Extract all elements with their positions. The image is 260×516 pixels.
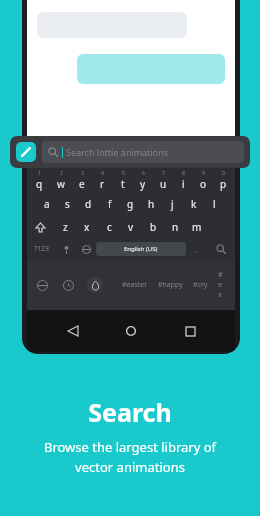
button[interactable]: d xyxy=(78,192,99,216)
button[interactable]: ?123 xyxy=(27,238,56,260)
staticText: d xyxy=(85,197,92,211)
staticText: 8 xyxy=(182,170,185,177)
button[interactable]: a xyxy=(37,192,57,216)
button[interactable]: 4 xyxy=(92,168,113,192)
button[interactable]: l xyxy=(204,192,225,216)
staticText: #cry xyxy=(193,280,208,290)
staticText: c xyxy=(107,220,112,234)
button[interactable]: 6 xyxy=(133,168,153,192)
button[interactable]: 9 xyxy=(193,168,213,192)
button[interactable]: #cry xyxy=(188,280,213,290)
staticText: f xyxy=(108,197,112,211)
staticText: g xyxy=(127,197,134,211)
button[interactable]: #happy xyxy=(153,280,188,290)
button[interactable]: k xyxy=(183,192,204,216)
staticText: k xyxy=(191,197,197,211)
staticText: b xyxy=(150,220,157,234)
button[interactable]: Recent xyxy=(61,278,75,292)
staticText: l xyxy=(213,197,216,211)
button[interactable]: c xyxy=(98,216,120,238)
staticText: 2 xyxy=(60,170,63,177)
staticText: 3 xyxy=(81,170,84,177)
staticText: m xyxy=(192,220,202,234)
button[interactable]: Lottie xyxy=(16,142,36,162)
button[interactable]: Back xyxy=(60,318,86,344)
button[interactable]: b xyxy=(142,216,164,238)
staticText: #ex xyxy=(218,270,222,300)
staticText: English (US) xyxy=(124,245,158,253)
button[interactable]: English (US) xyxy=(96,242,186,256)
button[interactable]: 2 xyxy=(50,168,71,192)
staticText: p xyxy=(220,177,227,191)
button[interactable]: #easter xyxy=(117,280,153,290)
staticText: e xyxy=(79,177,85,191)
staticText: x xyxy=(84,220,90,234)
button[interactable]: n xyxy=(164,216,186,238)
button[interactable]: f xyxy=(99,192,120,216)
button[interactable]: . xyxy=(186,238,206,260)
staticText: h xyxy=(148,197,155,211)
staticText: o xyxy=(200,177,207,191)
button[interactable]: 7 xyxy=(153,168,173,192)
button[interactable]: Shift xyxy=(27,216,54,238)
button[interactable]: z xyxy=(54,216,76,238)
button[interactable]: Trending xyxy=(87,277,103,293)
button[interactable]: 8 xyxy=(173,168,193,192)
button[interactable]: s xyxy=(57,192,78,216)
staticText: a xyxy=(44,197,50,211)
button[interactable]: x xyxy=(76,216,98,238)
staticText: r xyxy=(100,177,105,191)
button[interactable]: h xyxy=(141,192,162,216)
staticText: y xyxy=(140,177,146,191)
button[interactable]: 3 xyxy=(71,168,92,192)
button[interactable]: Globe xyxy=(35,278,49,292)
staticText: 6 xyxy=(142,170,145,177)
staticText: 1 xyxy=(38,170,41,177)
button[interactable]: Voice input xyxy=(56,238,76,260)
button[interactable]: 0 xyxy=(213,168,233,192)
button[interactable]: Recent apps xyxy=(177,318,203,344)
button[interactable]: Home xyxy=(118,318,144,344)
staticText: 9 xyxy=(202,170,205,177)
staticText: Browse the largest library of vector ani… xyxy=(16,438,244,476)
button[interactable]: Lottie xyxy=(10,136,250,168)
button[interactable]: m xyxy=(186,216,208,238)
button[interactable]: 5 xyxy=(113,168,133,192)
staticText: Search xyxy=(88,395,172,429)
staticText: t xyxy=(121,177,125,191)
button[interactable]: #ex xyxy=(213,270,227,300)
staticText: z xyxy=(63,220,68,234)
staticText: 0 xyxy=(222,170,225,177)
button[interactable]: Search xyxy=(206,238,235,260)
staticText: #happy xyxy=(158,280,183,290)
staticText: u xyxy=(160,177,167,191)
staticText: s xyxy=(65,197,70,211)
staticText: 4 xyxy=(101,170,104,177)
staticText: n xyxy=(172,220,179,234)
button[interactable]: 1 xyxy=(29,168,50,192)
staticText: 5 xyxy=(122,170,125,177)
button[interactable]: g xyxy=(120,192,141,216)
staticText: 7 xyxy=(162,170,165,177)
button[interactable]: Change language xyxy=(76,238,96,260)
staticText: w xyxy=(57,177,65,191)
staticText: q xyxy=(36,177,43,191)
button[interactable]: v xyxy=(120,216,142,238)
staticText: v xyxy=(128,220,134,234)
button[interactable]: Search lottie animations xyxy=(42,141,244,163)
staticText: ?123 xyxy=(34,244,50,254)
staticText: Search lottie animations xyxy=(66,146,169,158)
staticText: i xyxy=(182,177,185,191)
staticText: . xyxy=(195,243,198,255)
staticText: #easter xyxy=(122,280,148,290)
button[interactable]: j xyxy=(162,192,183,216)
staticText: j xyxy=(171,197,174,211)
